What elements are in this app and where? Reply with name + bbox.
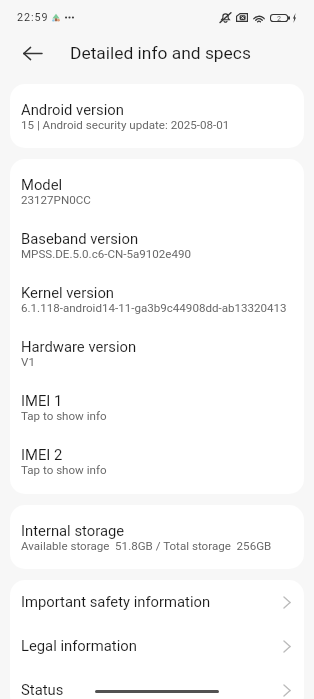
staticText: 23127PN0CC xyxy=(21,193,91,207)
staticText: Available storage 51.8GB / Total storage… xyxy=(21,539,272,553)
button[interactable]: Kernel version xyxy=(10,267,304,321)
button[interactable]: Important safety information xyxy=(10,580,304,623)
staticText: IMEI 1 xyxy=(21,392,63,409)
staticText: 22:59 xyxy=(17,11,49,24)
staticText: Android version xyxy=(21,101,124,118)
staticText: 2 xyxy=(277,14,282,22)
staticText: Hardware version xyxy=(21,338,137,355)
staticText: 6.1.118-android14-11-ga3b9c44908dd-ab133… xyxy=(21,301,287,315)
staticText: 15 | Android security update: 2025-08-01 xyxy=(21,118,230,132)
staticText: IMEI 2 xyxy=(21,446,63,463)
button[interactable]: Status xyxy=(10,668,304,699)
staticText: V1 xyxy=(21,355,35,369)
staticText: Status xyxy=(21,681,64,698)
staticText: Legal information xyxy=(21,637,137,654)
button[interactable]: Android version xyxy=(10,84,304,148)
staticText: Important safety information xyxy=(21,593,211,610)
staticText: Kernel version xyxy=(21,284,115,301)
staticText: Internal storage xyxy=(21,522,125,539)
button[interactable]: IMEI 2 xyxy=(10,429,304,494)
button[interactable]: Internal storage xyxy=(10,505,304,569)
staticText: Tap to show info xyxy=(21,409,107,423)
staticText: Baseband version xyxy=(21,230,139,247)
button[interactable]: Model xyxy=(10,159,304,213)
staticText: Model xyxy=(21,176,63,193)
button[interactable]: Legal information xyxy=(10,623,304,668)
button[interactable]: IMEI 1 xyxy=(10,375,304,429)
button[interactable]: Baseband version xyxy=(10,213,304,267)
staticText: Detailed info and specs xyxy=(70,43,251,63)
staticText: MPSS.DE.5.0.c6-CN-5a9102e490 xyxy=(21,247,192,261)
staticText: Tap to show info xyxy=(21,463,107,477)
button[interactable]: Back xyxy=(14,35,50,71)
button[interactable]: Hardware version xyxy=(10,321,304,375)
